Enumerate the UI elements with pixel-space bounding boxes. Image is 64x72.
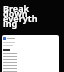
staticText: Break down everything	[3, 2, 39, 30]
